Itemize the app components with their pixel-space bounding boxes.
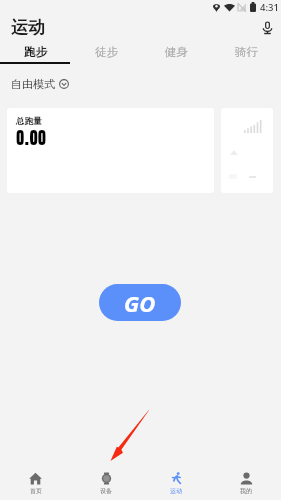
staticText: 自由模式 <box>11 77 55 91</box>
staticText: 0.00 <box>16 121 47 154</box>
button[interactable]: GO <box>99 284 181 321</box>
button[interactable]: 设备 <box>71 466 141 500</box>
staticText: 设备 <box>100 487 112 495</box>
button[interactable] <box>221 108 273 193</box>
staticText: 4:31 <box>260 1 279 14</box>
staticText: 骑行 <box>235 45 258 59</box>
button[interactable]: 骑行 <box>211 40 281 64</box>
staticText: 徒步 <box>95 45 118 59</box>
button[interactable]: 自由模式 <box>11 77 69 91</box>
staticText: 首页 <box>30 487 42 495</box>
staticText: GO <box>124 288 156 318</box>
staticText: 健身 <box>165 45 188 59</box>
button[interactable]: 徒步 <box>71 40 141 64</box>
button[interactable]: 首页 <box>0 466 71 500</box>
staticText: 总跑量 <box>16 116 42 127</box>
staticText: 跑步 <box>24 45 47 59</box>
button[interactable]: 总跑量 <box>7 108 214 193</box>
button[interactable]: Voice search <box>256 17 278 39</box>
button[interactable]: 健身 <box>141 40 211 64</box>
staticText: 我的 <box>240 487 252 495</box>
staticText: 运动 <box>11 17 45 38</box>
button[interactable]: 运动 <box>141 466 211 500</box>
staticText: 运动 <box>170 487 182 495</box>
button[interactable]: 我的 <box>211 466 281 500</box>
button[interactable]: 跑步 <box>0 40 71 64</box>
